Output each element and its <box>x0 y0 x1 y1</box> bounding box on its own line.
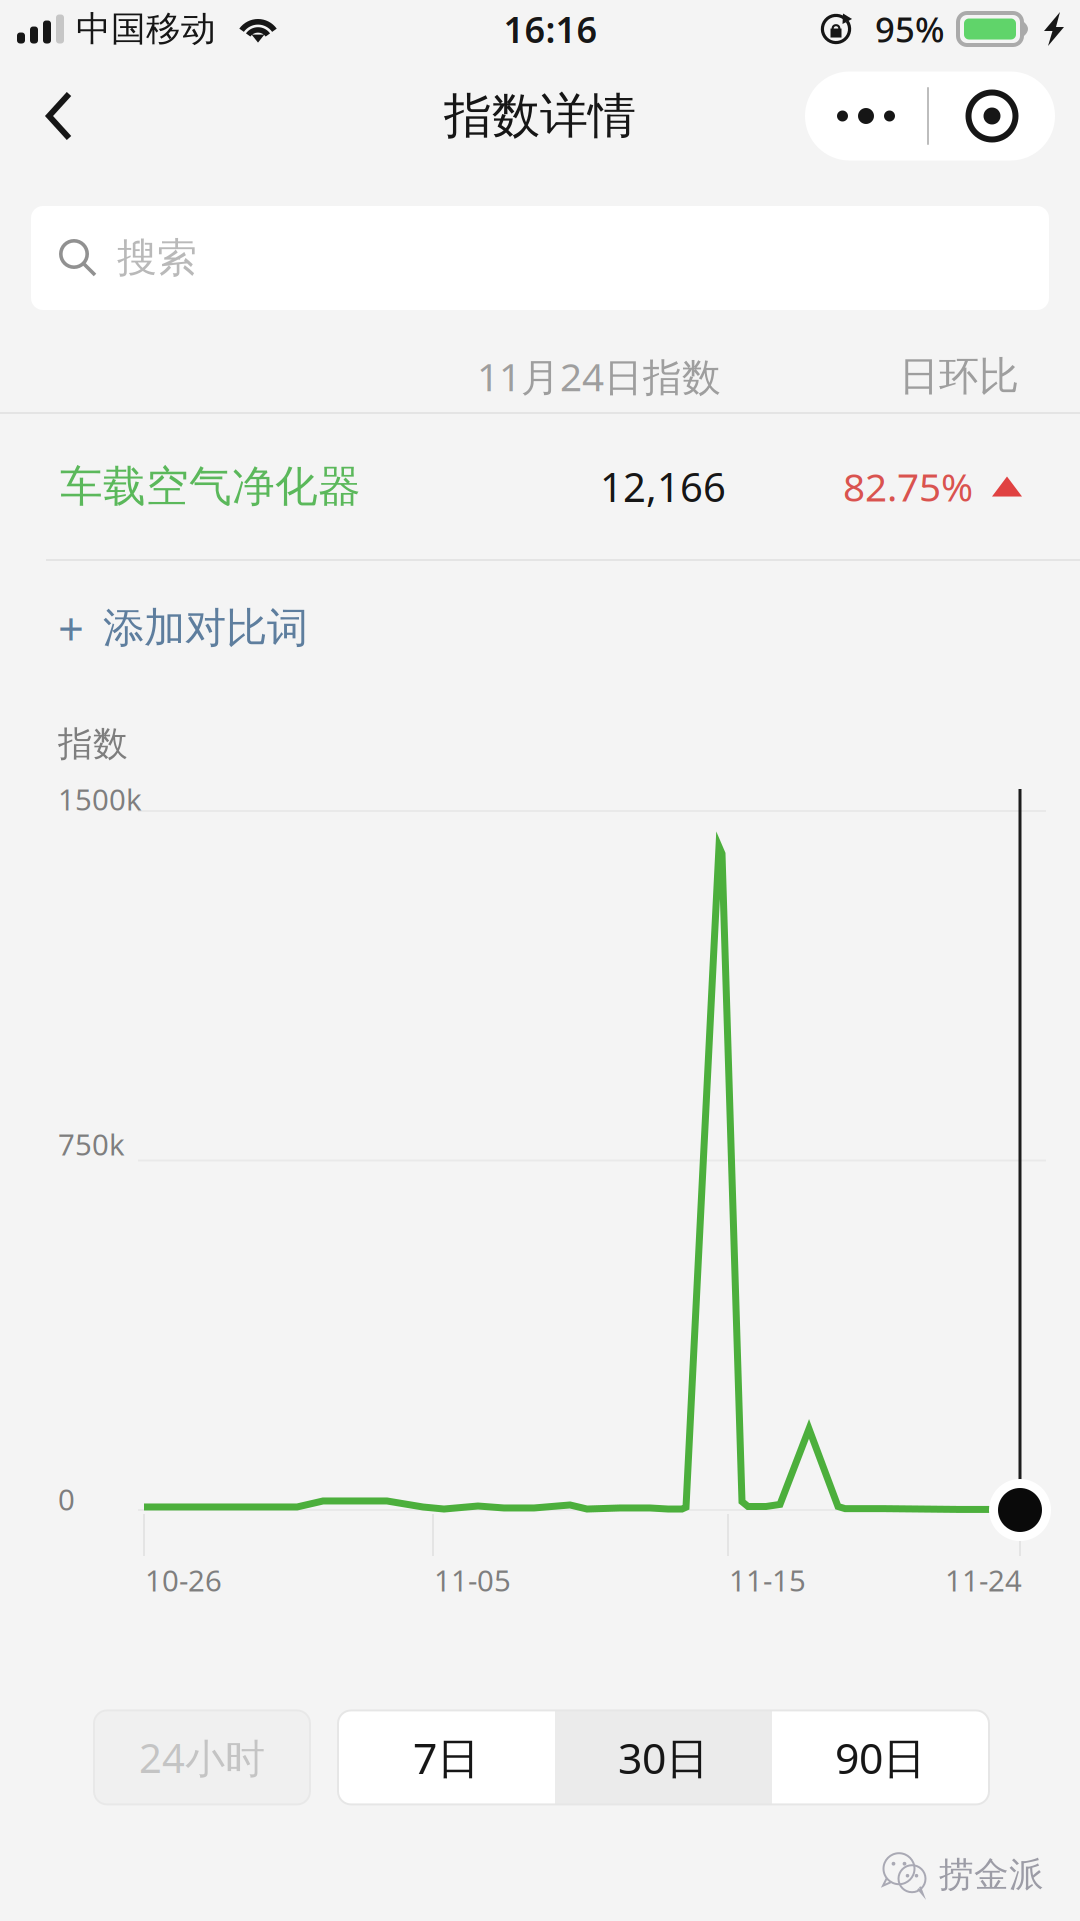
button[interactable]: 90日 <box>772 1710 989 1804</box>
staticText: 30日 <box>618 1729 709 1786</box>
staticText: 指数详情 <box>444 86 636 145</box>
button[interactable]: 7日 <box>338 1710 555 1804</box>
staticText: 10-26 <box>145 1560 222 1599</box>
staticText: 16:16 <box>503 5 597 53</box>
staticText: 11-05 <box>434 1560 511 1599</box>
staticText: 捞金派 <box>939 1853 1044 1896</box>
button[interactable]: 30日 <box>555 1710 772 1804</box>
staticText: 7日 <box>413 1729 480 1786</box>
staticText: 82.75% <box>843 461 973 512</box>
button[interactable]: More options <box>805 71 927 161</box>
staticText: 95% <box>875 6 945 52</box>
button[interactable]: 搜索 <box>31 206 1049 310</box>
staticText: 添加对比词 <box>103 603 308 653</box>
staticText: 1500k <box>58 779 142 818</box>
staticText: 搜索 <box>117 233 197 282</box>
staticText: 24小时 <box>139 1731 265 1784</box>
staticText: 0 <box>58 1479 75 1518</box>
staticText: 750k <box>58 1124 125 1163</box>
staticText: 日环比 <box>899 352 1019 401</box>
button[interactable]: Close mini program <box>929 71 1055 161</box>
button[interactable]: + <box>0 561 1080 695</box>
staticText: 车载空气净化器 <box>60 460 361 513</box>
staticText: 11月24日指数 <box>477 351 721 402</box>
staticText: 指数 <box>58 723 128 765</box>
staticText: 11-15 <box>729 1560 806 1599</box>
staticText: 中国移动 <box>76 8 216 50</box>
staticText: + <box>58 598 84 658</box>
staticText: 12,166 <box>600 460 726 513</box>
staticText: 90日 <box>835 1729 926 1786</box>
button[interactable]: 24小时 <box>94 1710 310 1804</box>
button[interactable]: Back <box>0 71 103 161</box>
staticText: 11-24 <box>945 1560 1022 1599</box>
